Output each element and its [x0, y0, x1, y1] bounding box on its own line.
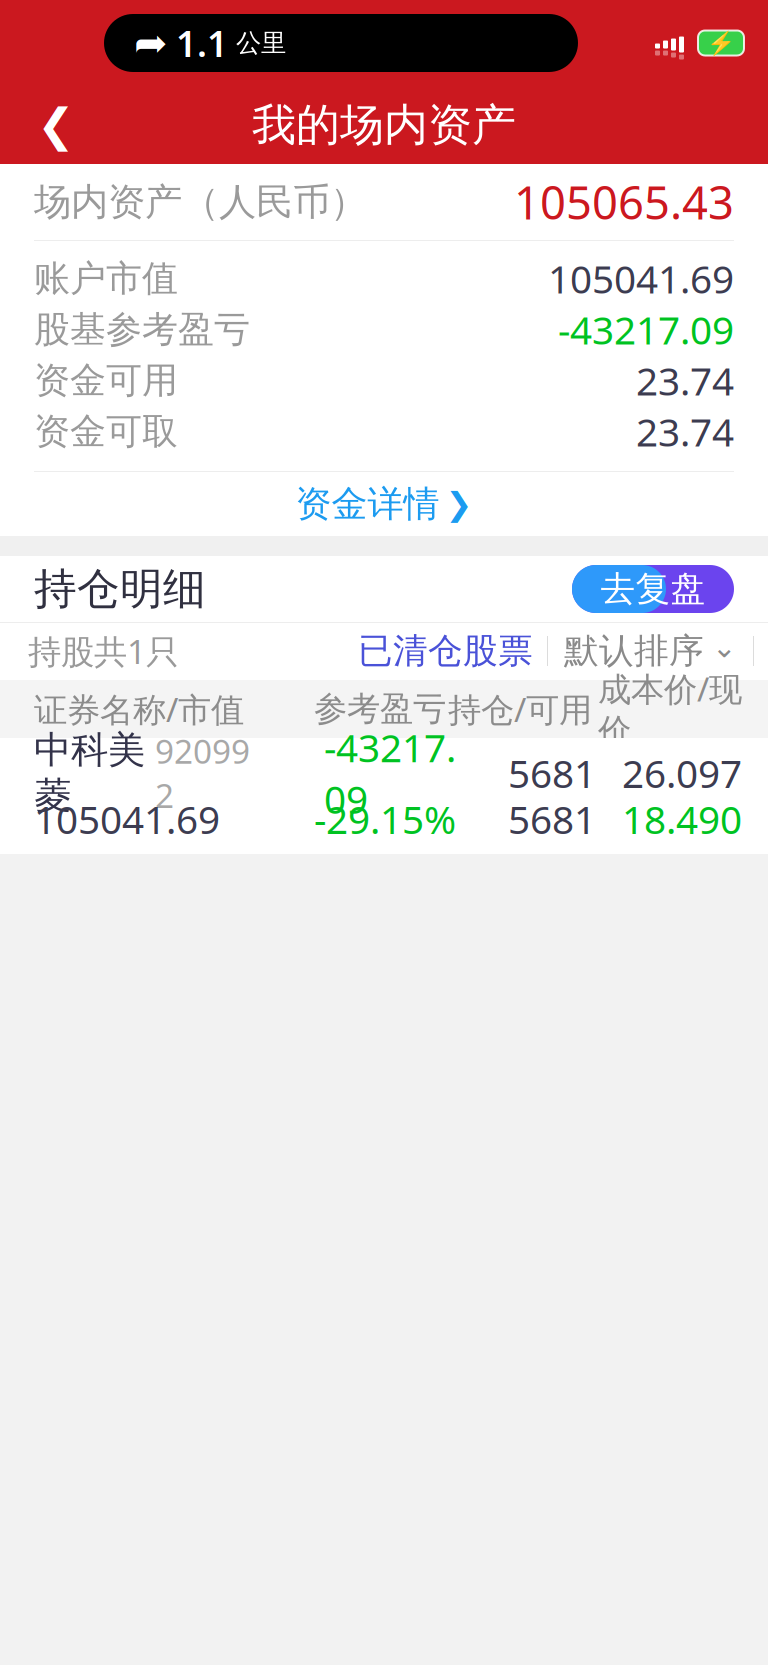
staticText: 公里	[236, 27, 286, 58]
button[interactable]: 去复盘	[572, 565, 734, 613]
button[interactable]: 已清仓股票	[344, 626, 547, 676]
staticText: 账户市值	[34, 256, 178, 301]
staticText: ❮	[37, 99, 75, 151]
staticText: 23.74	[636, 355, 734, 406]
staticText: 23.74	[636, 406, 734, 457]
staticText: 1.1	[176, 19, 228, 67]
button[interactable]: 资金详情	[0, 472, 768, 536]
staticText: 资金可取	[34, 409, 178, 454]
staticText: 我的场内资产	[252, 98, 516, 152]
staticText: 证券名称/市值	[34, 687, 244, 731]
staticText: 中科美菱	[34, 727, 145, 819]
staticText: -29.15%	[314, 793, 456, 845]
staticText: 资金可用	[34, 358, 178, 403]
staticText: 成本价/现价	[598, 666, 742, 752]
staticText: 5681	[508, 793, 596, 845]
button[interactable]: 中科美菱	[0, 738, 768, 854]
staticText: 股基参考盈亏	[34, 307, 250, 352]
staticText: 持股共1只	[28, 629, 179, 673]
staticText: 持仓明细	[34, 563, 206, 615]
staticText: 105065.43	[514, 172, 734, 232]
staticText: 场内资产（人民币）	[34, 179, 367, 225]
staticText: 920992	[155, 729, 250, 817]
staticText: 持仓/可用	[448, 687, 592, 731]
staticText: ⚡	[707, 30, 735, 56]
staticText: 已清仓股票	[358, 630, 533, 672]
staticText: 资金详情	[295, 482, 439, 526]
button[interactable]: Back	[18, 92, 94, 158]
staticText: 参考盈亏	[314, 688, 446, 729]
staticText: ❯	[445, 486, 472, 522]
button[interactable]: 默认排序	[548, 626, 753, 676]
staticText: 去复盘	[600, 568, 705, 610]
staticText: 26.097	[622, 747, 742, 799]
staticText: ⌄	[712, 630, 737, 664]
staticText: 18.490	[622, 793, 742, 845]
staticText: ➦	[134, 20, 168, 66]
staticText: 105041.69	[34, 793, 220, 845]
staticText: 105041.69	[548, 253, 734, 304]
staticText: 默认排序	[564, 630, 704, 672]
staticText: -43217.09	[324, 722, 456, 824]
staticText: 5681	[508, 747, 596, 799]
staticText: -43217.09	[558, 304, 734, 355]
